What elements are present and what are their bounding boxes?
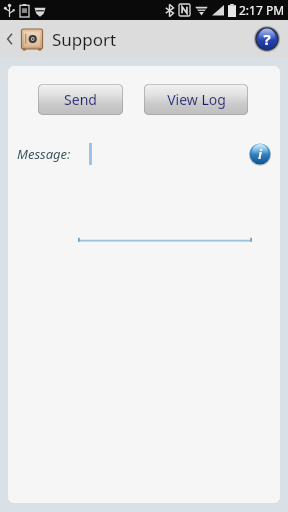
button[interactable]: View Log [144, 84, 248, 115]
button[interactable]: Information [248, 142, 272, 166]
staticText: i [258, 146, 262, 162]
other: Back [6, 32, 14, 46]
staticText: ? [263, 29, 271, 49]
button[interactable] [89, 141, 248, 167]
staticText: Message: [17, 145, 71, 163]
button[interactable]: Back [0, 23, 125, 55]
button[interactable]: Help [252, 24, 282, 54]
staticText: Support [52, 28, 117, 51]
staticText: View Log [167, 90, 226, 109]
button[interactable]: Send [38, 84, 123, 115]
staticText: Send [64, 90, 97, 109]
staticText: 2:17 PM [239, 2, 285, 18]
